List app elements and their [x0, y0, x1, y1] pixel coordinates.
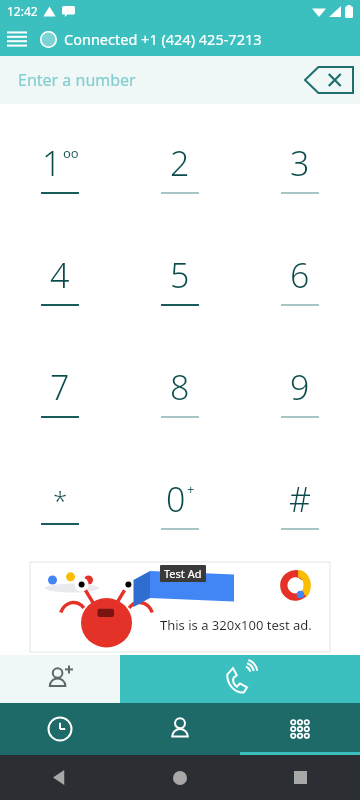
staticText: 9 [290, 364, 310, 410]
staticText: * [53, 482, 68, 517]
staticText: Test Ad [164, 566, 202, 581]
button[interactable]: 7 [0, 335, 120, 447]
button[interactable]: 4 [0, 223, 120, 335]
staticText: 6 [290, 252, 310, 298]
staticText: Enter a number [18, 69, 136, 91]
button[interactable]: 3 [240, 110, 360, 223]
button[interactable]: 8 [120, 335, 240, 447]
staticText: 5 [170, 252, 190, 298]
staticText: 4 [50, 252, 70, 298]
staticText: 3 [290, 140, 310, 186]
staticText: oo [63, 144, 79, 162]
button[interactable]: 9 [240, 335, 360, 447]
button[interactable]: Contacts [120, 703, 240, 755]
staticText: Connected +1 (424) 425-7213 [64, 29, 262, 49]
button[interactable]: * [0, 447, 120, 559]
staticText: + [187, 480, 195, 498]
button[interactable]: Open navigation menu [0, 22, 34, 56]
button[interactable]: Delete [298, 56, 360, 104]
button[interactable]: 2 [120, 110, 240, 223]
button[interactable]: 0 [120, 447, 240, 559]
staticText: 1 [42, 140, 62, 186]
button[interactable]: This is a 320x100 test ad. [30, 562, 330, 652]
button[interactable]: # [240, 447, 360, 559]
button[interactable]: Call [120, 655, 360, 703]
staticText: This is a 320x100 test ad. [160, 616, 312, 634]
button[interactable]: 1 [0, 110, 120, 223]
button[interactable]: Recents [0, 703, 120, 755]
staticText: 7 [50, 364, 70, 410]
button[interactable]: 5 [120, 223, 240, 335]
staticText: # [289, 476, 311, 522]
staticText: 2 [170, 140, 190, 186]
staticText: 8 [170, 364, 190, 410]
button[interactable]: Add contact [0, 655, 120, 703]
button[interactable]: Keypad [240, 703, 360, 755]
button[interactable]: 6 [240, 223, 360, 335]
staticText: 12:42 [7, 3, 38, 19]
staticText: 0 [166, 476, 186, 522]
